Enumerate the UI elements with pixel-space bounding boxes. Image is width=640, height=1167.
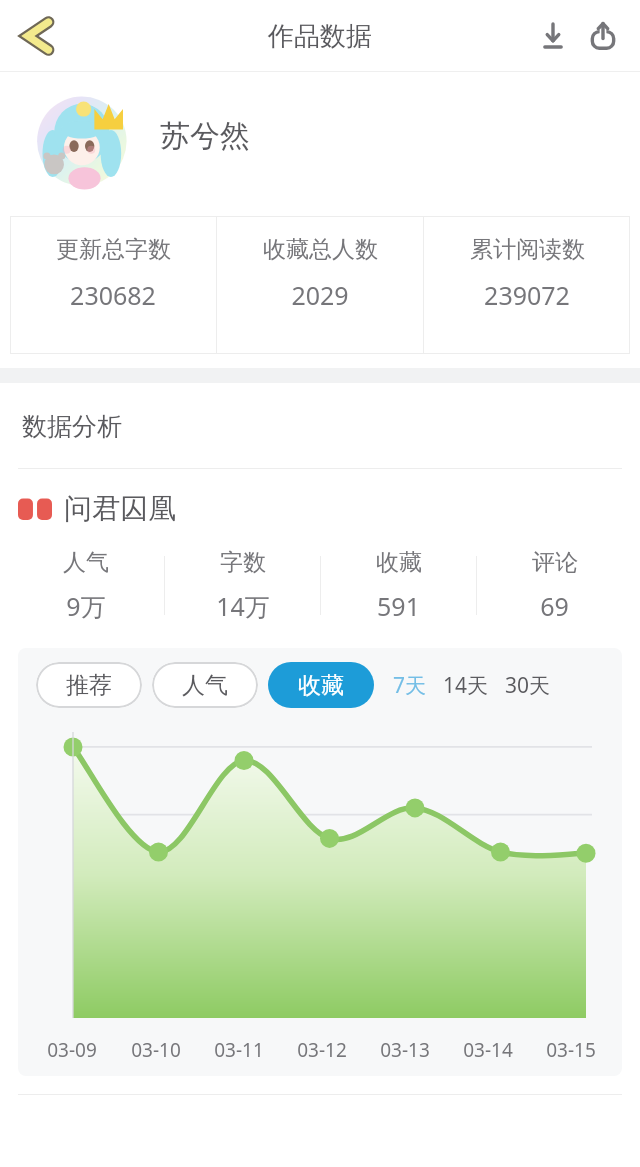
staticText: 问君囚凰 xyxy=(64,491,176,526)
button[interactable]: 收藏 xyxy=(268,662,374,708)
button[interactable]: 累计阅读数 xyxy=(424,216,630,354)
button[interactable]: 人气 xyxy=(8,536,164,634)
staticText: 数据分析 xyxy=(22,411,122,442)
staticText: 人气 xyxy=(182,671,228,700)
staticText: 收藏总人数 xyxy=(263,235,378,264)
staticText: 239072 xyxy=(484,278,570,312)
button[interactable]: 更新总字数 xyxy=(10,216,216,354)
button[interactable]: 问君囚凰 xyxy=(18,491,640,526)
button[interactable]: 收藏总人数 xyxy=(217,216,423,354)
button[interactable]: 苏兮然 xyxy=(0,72,640,200)
button[interactable]: Download xyxy=(528,11,578,61)
staticText: 14万 xyxy=(216,589,270,623)
staticText: 作品数据 xyxy=(268,20,372,53)
staticText: 更新总字数 xyxy=(56,235,171,264)
staticText: 字数 xyxy=(220,548,266,577)
staticText: 03-15 xyxy=(546,1037,596,1063)
staticText: 69 xyxy=(540,589,569,623)
staticText: 累计阅读数 xyxy=(470,235,585,264)
staticText: 591 xyxy=(377,589,420,623)
button[interactable]: 30天 xyxy=(502,663,554,708)
staticText: 03-13 xyxy=(380,1037,430,1063)
staticText: 人气 xyxy=(63,548,109,577)
button[interactable]: 14天 xyxy=(440,663,492,708)
staticText: 收藏 xyxy=(298,671,344,700)
staticText: 03-09 xyxy=(47,1037,97,1063)
staticText: 推荐 xyxy=(66,671,112,700)
staticText: 9万 xyxy=(66,589,106,623)
staticText: 03-11 xyxy=(214,1037,264,1063)
staticText: 收藏 xyxy=(376,548,422,577)
button[interactable]: 推荐 xyxy=(36,662,142,708)
button[interactable]: 人气 xyxy=(152,662,258,708)
staticText: 230682 xyxy=(70,278,156,312)
staticText: 评论 xyxy=(532,548,578,577)
button[interactable]: 7天 xyxy=(390,663,430,708)
staticText: 03-12 xyxy=(297,1037,347,1063)
staticText: 03-14 xyxy=(463,1037,513,1063)
button[interactable]: 评论 xyxy=(477,536,632,634)
button[interactable]: Back xyxy=(4,6,64,66)
button[interactable]: Share xyxy=(578,11,628,61)
button[interactable]: 字数 xyxy=(165,536,320,634)
staticText: 2029 xyxy=(291,278,349,312)
button[interactable]: 收藏 xyxy=(321,536,476,634)
staticText: 苏兮然 xyxy=(160,117,250,155)
staticText: 03-10 xyxy=(131,1037,181,1063)
